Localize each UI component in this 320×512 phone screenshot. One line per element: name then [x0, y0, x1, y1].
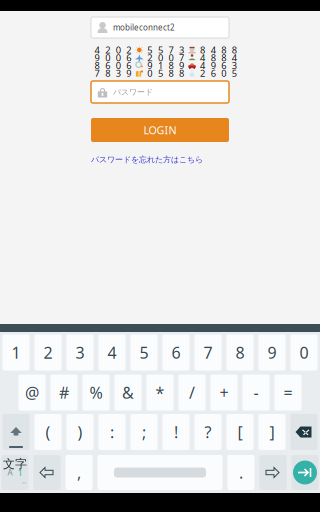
staticText: 8	[211, 51, 216, 64]
staticText: 9	[147, 59, 152, 72]
staticText: ,	[77, 462, 81, 483]
button[interactable]: ;	[130, 414, 157, 450]
button[interactable]: &	[114, 374, 141, 410]
button[interactable]: #	[50, 374, 77, 410]
staticText: 6	[171, 342, 180, 363]
button[interactable]: Next	[291, 455, 318, 490]
button[interactable]: (	[34, 414, 61, 450]
button[interactable]: パスワードを忘れた方はこちら	[91, 154, 229, 165]
staticText: 8	[200, 44, 205, 56]
staticText: 7	[179, 51, 184, 64]
button[interactable]: 9	[258, 334, 285, 370]
staticText: 4	[211, 44, 216, 56]
staticText: 9	[95, 51, 100, 64]
staticText: ?	[204, 421, 211, 443]
button[interactable]: ?	[194, 414, 221, 450]
button[interactable]: Space	[97, 455, 222, 490]
staticText: 文	[3, 457, 15, 471]
button[interactable]: Delete	[290, 414, 317, 450]
button[interactable]: LOGIN	[91, 118, 229, 142]
staticText: 2	[43, 342, 52, 363]
button[interactable]: 3	[66, 334, 93, 370]
button[interactable]: 7	[194, 334, 221, 370]
staticText: 4	[107, 342, 116, 363]
staticText: 6	[105, 59, 110, 72]
button[interactable]: mobileconnect2	[91, 17, 229, 38]
staticText: 8	[221, 51, 226, 64]
button[interactable]: ]	[258, 414, 285, 450]
staticText: 0	[116, 44, 121, 56]
staticText: -	[253, 382, 258, 403]
button[interactable]: .	[227, 455, 254, 490]
staticText: 9	[267, 342, 276, 363]
staticText: 3	[232, 59, 237, 72]
staticText: 5	[158, 44, 163, 56]
staticText: 0	[105, 51, 110, 64]
staticText: (	[45, 421, 50, 443]
button[interactable]: Right	[259, 455, 286, 490]
staticText: 4	[200, 59, 205, 72]
button[interactable]: Input mode	[1, 455, 28, 490]
staticText: 3	[75, 342, 84, 363]
button[interactable]: パスワード	[91, 81, 229, 103]
staticText: 0	[221, 67, 226, 79]
staticText: 9	[179, 59, 184, 72]
button[interactable]: Left	[33, 455, 60, 490]
staticText: 7	[203, 342, 212, 363]
staticText: 1	[158, 59, 163, 72]
staticText: 7	[95, 67, 100, 79]
button[interactable]: -	[242, 374, 269, 410]
button[interactable]: Shift	[2, 414, 29, 450]
staticText: 0	[299, 342, 308, 363]
staticText: A	[7, 467, 12, 478]
button[interactable]: )	[66, 414, 93, 450]
staticText: 9	[126, 67, 131, 79]
staticText: LOGIN	[143, 123, 176, 137]
button[interactable]: 4	[98, 334, 125, 370]
staticText: パスワードを忘れた方はこちら	[91, 155, 203, 164]
staticText: #	[59, 382, 69, 403]
button[interactable]: 6	[162, 334, 189, 370]
staticText: 5	[147, 44, 152, 56]
button[interactable]: 5	[130, 334, 157, 370]
button[interactable]: @	[18, 374, 45, 410]
staticText: ..	[22, 475, 26, 486]
button[interactable]: ,	[65, 455, 92, 490]
button[interactable]: /	[178, 374, 205, 410]
staticText: /	[189, 382, 195, 403]
staticText: :	[110, 421, 114, 443]
staticText: 字	[15, 457, 27, 471]
staticText: 0	[158, 51, 163, 64]
button[interactable]: *	[146, 374, 173, 410]
button[interactable]: !	[162, 414, 189, 450]
button[interactable]: [	[226, 414, 253, 450]
staticText: .	[239, 462, 243, 483]
staticText: 5	[232, 67, 237, 79]
button[interactable]: =	[274, 374, 301, 410]
button[interactable]: 2	[34, 334, 61, 370]
button[interactable]: +	[210, 374, 237, 410]
staticText: 8	[168, 67, 173, 79]
staticText: 8	[235, 342, 244, 363]
button[interactable]: :	[98, 414, 125, 450]
staticText: &	[122, 382, 134, 403]
staticText: 1	[17, 466, 22, 479]
staticText: パスワード	[113, 87, 153, 97]
staticText: 6	[126, 51, 131, 64]
staticText: ]	[269, 421, 274, 443]
button[interactable]: 0	[290, 334, 317, 370]
staticText: mobileconnect2	[113, 22, 175, 33]
staticText: 7	[168, 44, 173, 56]
staticText: %	[89, 382, 102, 403]
button[interactable]: 1	[2, 334, 29, 370]
staticText: +	[219, 382, 228, 403]
staticText: 2	[147, 51, 152, 64]
staticText: 3	[116, 67, 121, 79]
button[interactable]: %	[82, 374, 109, 410]
button[interactable]: 8	[226, 334, 253, 370]
staticText: 2	[126, 44, 131, 56]
staticText: *	[155, 382, 164, 403]
staticText: 4	[232, 51, 237, 64]
staticText: 0	[168, 51, 173, 64]
staticText: 8	[95, 59, 100, 72]
